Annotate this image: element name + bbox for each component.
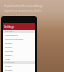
button[interactable]: Notifications <box>3 33 35 37</box>
button[interactable]: Apps <box>3 57 35 61</box>
button[interactable]: Display <box>3 41 35 45</box>
button[interactable]: Backup <box>3 68 35 72</box>
button[interactable]: Profile <box>3 64 35 68</box>
staticText: Sound & vibration <box>5 38 24 41</box>
button[interactable]: Settings <box>3 23 35 30</box>
button[interactable]: Privacy <box>3 45 35 49</box>
staticText: ACCOUNT <box>5 61 15 64</box>
staticText: Storage <box>5 50 13 53</box>
staticText: Display <box>5 42 13 45</box>
staticText: Backup <box>5 69 13 72</box>
staticText: experience across every device <box>4 9 42 13</box>
button[interactable]: Storage <box>3 49 35 53</box>
staticText: you own, fully redesigned. <box>4 14 36 18</box>
staticText: Battery <box>5 54 13 57</box>
staticText: Notifications <box>5 34 19 37</box>
staticText: A quick look at the new settings <box>4 4 43 8</box>
staticText: Profile <box>5 65 12 68</box>
staticText: Settings <box>4 25 15 29</box>
staticText: GENERAL <box>5 30 14 33</box>
button[interactable]: Battery <box>3 53 35 57</box>
staticText: Privacy <box>5 46 13 49</box>
staticText: Apps <box>5 58 11 61</box>
button[interactable]: Sound & vibration <box>3 37 35 41</box>
